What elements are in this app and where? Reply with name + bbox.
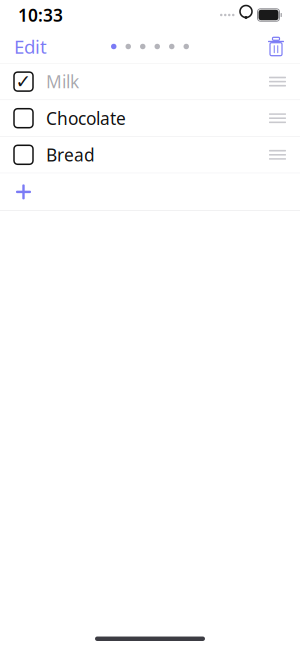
button[interactable]: Edit <box>0 29 61 63</box>
button[interactable]: Delete <box>252 29 300 63</box>
button[interactable]: ✓ <box>0 64 300 100</box>
staticText: Milk <box>46 70 79 93</box>
button[interactable]: Bread <box>0 137 300 173</box>
staticText: ✓ <box>15 71 31 92</box>
staticText: Bread <box>46 143 95 166</box>
button[interactable]: Add item <box>0 173 300 211</box>
staticText: 10:33 <box>18 3 63 26</box>
staticText: Edit <box>14 34 47 59</box>
button[interactable]: Chocolate <box>0 100 300 137</box>
staticText: Chocolate <box>46 107 126 130</box>
